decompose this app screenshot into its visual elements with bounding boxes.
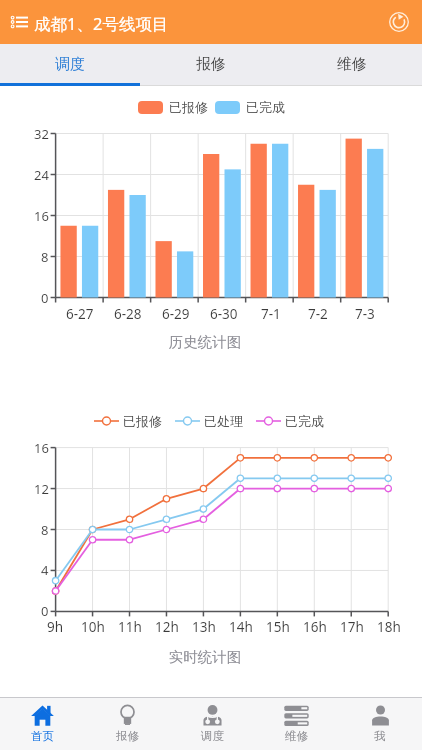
staticText: 13h xyxy=(192,618,216,636)
staticText: 我 xyxy=(374,729,386,743)
staticText: 9h xyxy=(47,618,64,636)
staticText: 已报修 xyxy=(123,413,162,429)
staticText: 已完成 xyxy=(246,99,285,115)
button[interactable]: 调度 xyxy=(170,698,254,750)
staticText: 实时统计图 xyxy=(0,648,416,666)
staticText: 7-3 xyxy=(355,305,375,323)
button[interactable]: Refresh xyxy=(384,7,414,37)
button[interactable]: Menu xyxy=(6,9,32,35)
staticText: 14h xyxy=(229,618,253,636)
staticText: 8 xyxy=(41,248,49,266)
staticText: 16 xyxy=(34,439,49,457)
staticText: 7-2 xyxy=(308,305,328,323)
button[interactable]: 我 xyxy=(338,698,422,750)
button[interactable]: 维修 xyxy=(254,698,338,750)
staticText: 16h xyxy=(303,618,327,636)
staticText: 已报修 xyxy=(169,99,208,115)
staticText: 报修 xyxy=(116,729,139,743)
staticText: 调度 xyxy=(201,729,224,743)
button[interactable]: 首页 xyxy=(0,698,85,750)
staticText: 15h xyxy=(266,618,290,636)
staticText: 维修 xyxy=(285,729,308,743)
button[interactable]: 调度 xyxy=(0,44,140,86)
staticText: 已处理 xyxy=(204,413,243,429)
button[interactable]: 报修 xyxy=(85,698,170,750)
staticText: 首页 xyxy=(31,729,54,743)
staticText: 8 xyxy=(41,521,49,539)
staticText: 12h xyxy=(155,618,179,636)
staticText: 6-29 xyxy=(162,305,190,323)
staticText: 6-28 xyxy=(114,305,142,323)
staticText: 6-30 xyxy=(210,305,238,323)
button[interactable]: 维修 xyxy=(281,44,422,86)
staticText: 17h xyxy=(340,618,364,636)
staticText: 已完成 xyxy=(285,413,324,429)
staticText: 调度 xyxy=(55,55,85,74)
staticText: 报修 xyxy=(196,55,226,74)
staticText: 12 xyxy=(34,480,49,498)
staticText: 维修 xyxy=(337,55,367,74)
staticText: 成都1、2号线项目 xyxy=(34,12,169,35)
staticText: 0 xyxy=(41,289,49,307)
staticText: 16 xyxy=(34,207,49,225)
staticText: 7-1 xyxy=(261,305,281,323)
staticText: 历史统计图 xyxy=(0,333,416,351)
staticText: 24 xyxy=(34,166,49,184)
staticText: 11h xyxy=(118,618,142,636)
staticText: 18h xyxy=(377,618,401,636)
staticText: 6-27 xyxy=(66,305,94,323)
staticText: 32 xyxy=(34,125,49,143)
staticText: 0 xyxy=(41,602,49,620)
button[interactable]: 报修 xyxy=(140,44,281,86)
staticText: 10h xyxy=(81,618,105,636)
staticText: 4 xyxy=(41,561,49,579)
